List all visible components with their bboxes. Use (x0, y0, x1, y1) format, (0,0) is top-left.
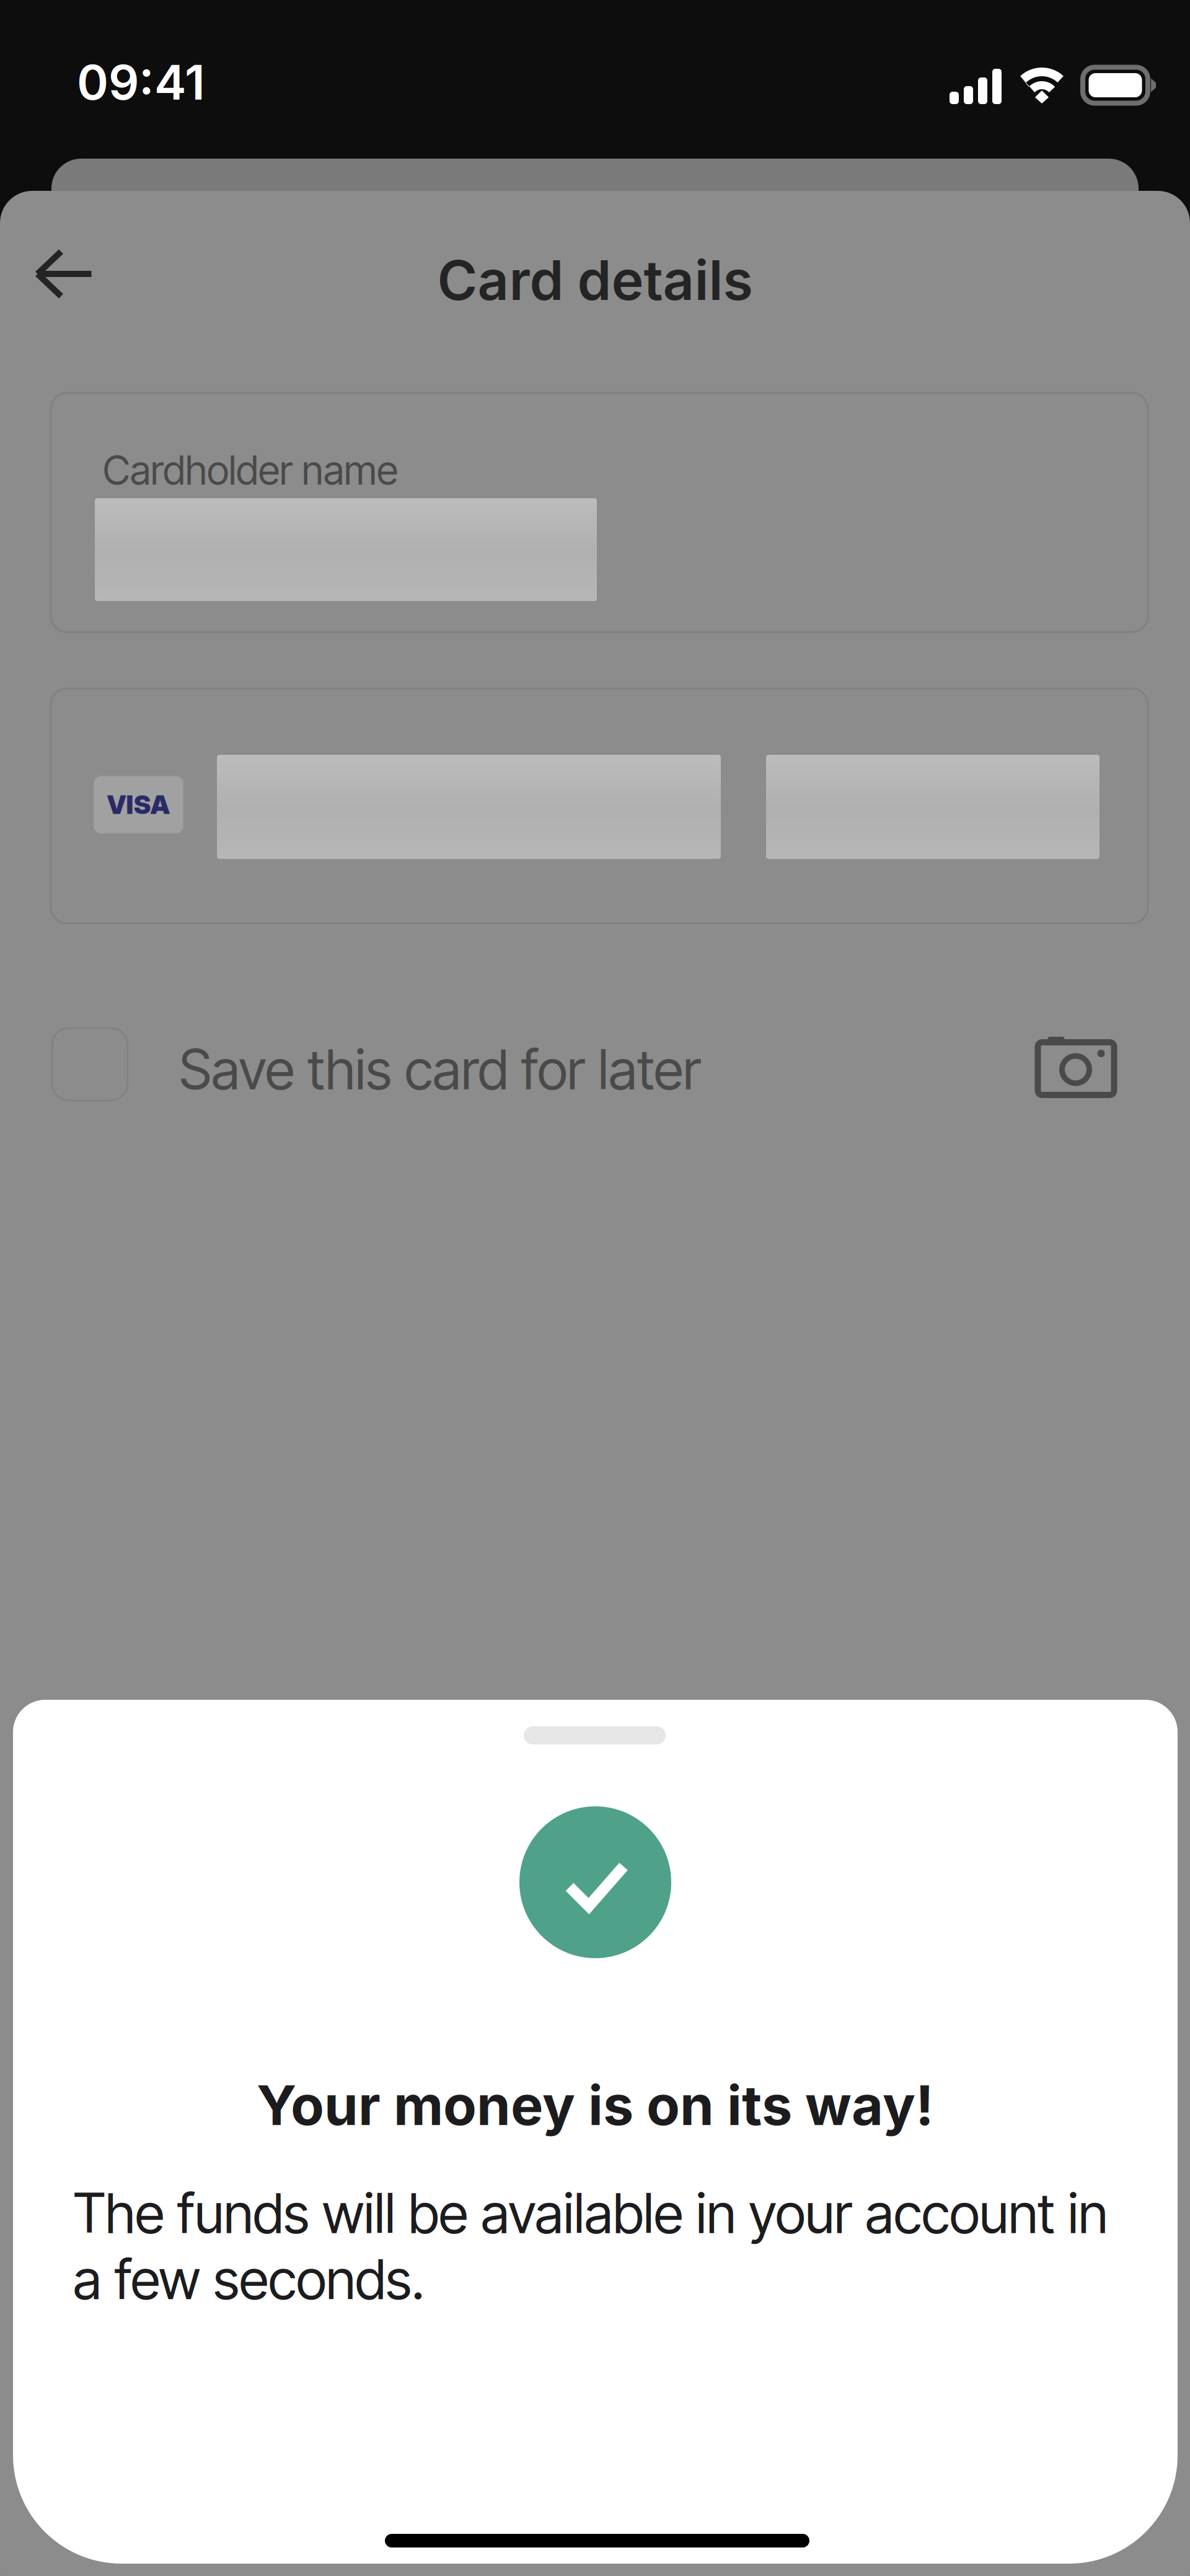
staticText: The funds will be available in your acco… (73, 2180, 1108, 2312)
staticText: VISA (107, 789, 170, 820)
button[interactable]: Scan card (1026, 1026, 1126, 1106)
staticText: Cardholder name (103, 446, 398, 494)
button[interactable]: Back (15, 228, 114, 321)
button[interactable]: Save this card for later (52, 1028, 740, 1101)
staticText: 09:41 (77, 53, 205, 111)
staticText: Your money is on its way! (257, 2072, 934, 2138)
staticText: Save this card for later (179, 1036, 701, 1102)
staticText: Card details (437, 247, 753, 313)
